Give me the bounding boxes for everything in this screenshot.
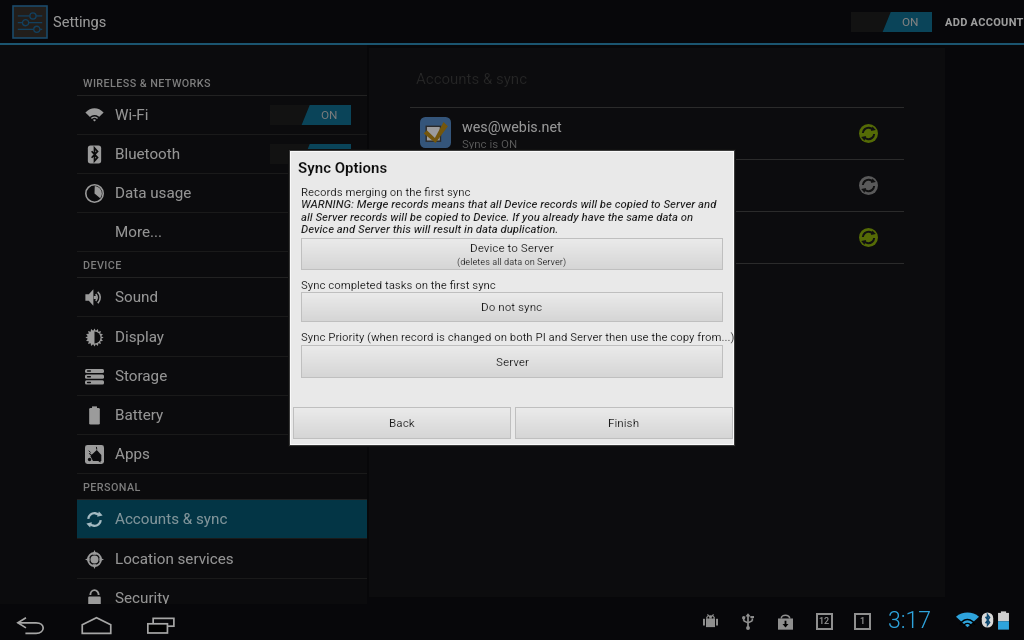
staticText: More... (115, 223, 162, 241)
staticText: 12 (819, 616, 830, 627)
staticText: Battery (115, 406, 164, 424)
staticText: Data usage (115, 184, 192, 202)
button[interactable]: Accounts sync switch (851, 12, 932, 32)
button[interactable]: ADD ACCOUNT (945, 5, 1024, 39)
button[interactable]: Storage (0, 357, 367, 395)
staticText: Device to Server (470, 241, 554, 255)
staticText: Sync Priority (when record is changed on… (301, 330, 735, 343)
staticText: Sync is ON (462, 137, 518, 150)
staticText: Wi-Fi (115, 106, 149, 124)
staticText: ON (321, 108, 338, 122)
button[interactable]: Location services (0, 540, 367, 578)
button[interactable]: Recent apps (141, 607, 181, 640)
button[interactable]: Server (301, 345, 723, 378)
staticText: Display (115, 328, 165, 346)
button[interactable]: Home (76, 607, 116, 640)
staticText: 3:17 (888, 607, 932, 634)
button[interactable]: Apps (0, 435, 367, 473)
button[interactable]: Do not sync (301, 292, 723, 322)
button[interactable]: Accounts & sync (0, 500, 367, 538)
staticText: ON (902, 15, 919, 29)
staticText: WIRELESS & NETWORKS (83, 77, 211, 90)
button[interactable]: Back (293, 407, 511, 439)
staticText: Do not sync (481, 300, 543, 314)
button[interactable]: wes@webis.net (369, 108, 945, 160)
staticText: Server (496, 355, 529, 369)
staticText: Sound (115, 288, 159, 306)
button[interactable]: Display (0, 318, 367, 356)
staticText: all Server records will be copied to Dev… (301, 210, 694, 223)
staticText: Security (115, 589, 170, 607)
staticText: (deletes all data on Server) (457, 256, 567, 267)
button[interactable]: Device to Server (301, 238, 723, 270)
button[interactable]: Sound (0, 278, 367, 316)
staticText: ON (321, 147, 338, 161)
button[interactable] (369, 160, 945, 212)
button[interactable]: Security (0, 579, 367, 617)
staticText: wes@webis.net (462, 119, 562, 136)
button[interactable]: Battery (0, 396, 367, 434)
staticText: Device and Server this will result in da… (301, 222, 559, 235)
staticText: Records merging on the first sync (301, 185, 471, 198)
staticText: Back (389, 416, 415, 430)
staticText: ADD ACCOUNT (945, 16, 1024, 29)
button[interactable]: Wi-Fi switch (270, 105, 351, 125)
button[interactable]: Data usage (0, 174, 367, 212)
button[interactable]: Bluetooth (0, 135, 367, 173)
staticText: PERSONAL (83, 481, 141, 494)
staticText: Location services (115, 550, 234, 568)
button[interactable]: Finish (515, 407, 733, 439)
staticText: Bluetooth (115, 145, 181, 163)
staticText: 1 (860, 616, 866, 627)
staticText: WARNING: Merge records means that all De… (301, 197, 717, 210)
button[interactable]: Settings app (13, 6, 47, 38)
button[interactable]: Wi-Fi (0, 96, 367, 134)
staticText: Sync completed tasks on the first sync (301, 278, 496, 291)
staticText: Storage (115, 367, 168, 385)
staticText: Settings (53, 13, 107, 30)
button[interactable] (369, 212, 945, 264)
staticText: Sync Options (298, 159, 388, 177)
button[interactable]: More... (0, 213, 367, 251)
button[interactable]: Bluetooth switch (270, 144, 351, 164)
staticText: Apps (115, 445, 150, 463)
button[interactable]: Back (11, 607, 51, 640)
staticText: Finish (608, 416, 640, 430)
staticText: Accounts & sync (416, 70, 527, 88)
staticText: DEVICE (83, 259, 122, 272)
staticText: Accounts & sync (115, 510, 228, 528)
